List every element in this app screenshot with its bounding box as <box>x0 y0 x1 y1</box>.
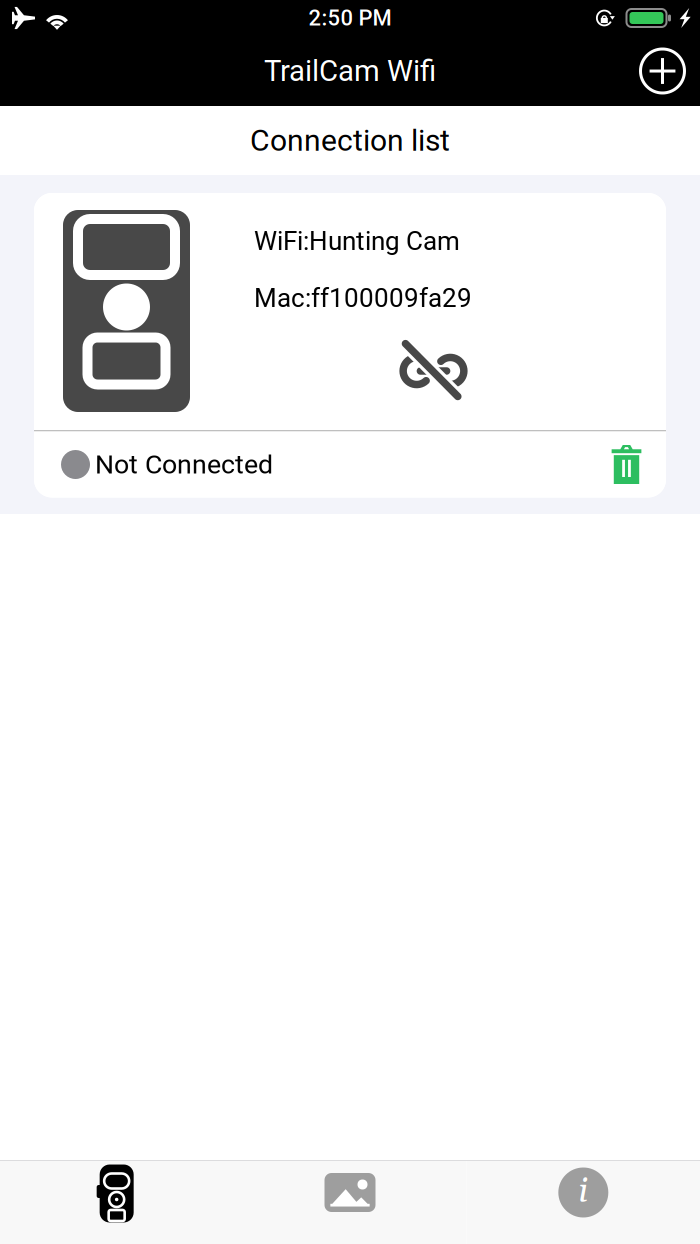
button[interactable]: Cameras <box>0 1161 233 1244</box>
staticText: TrailCam Wifi <box>264 54 436 88</box>
staticText: i <box>578 1169 588 1213</box>
staticText: Mac:ff100009fa29 <box>254 283 472 313</box>
staticText: Connection list <box>250 123 450 158</box>
staticText: WiFi:Hunting Cam <box>254 226 460 256</box>
staticText: 2:50 PM <box>308 5 391 31</box>
button[interactable]: Gallery <box>233 1161 467 1244</box>
button[interactable]: Not Connected <box>34 431 666 497</box>
button[interactable]: Info <box>467 1161 700 1244</box>
button[interactable]: Add connection <box>621 38 700 103</box>
staticText: Not Connected <box>95 449 273 480</box>
